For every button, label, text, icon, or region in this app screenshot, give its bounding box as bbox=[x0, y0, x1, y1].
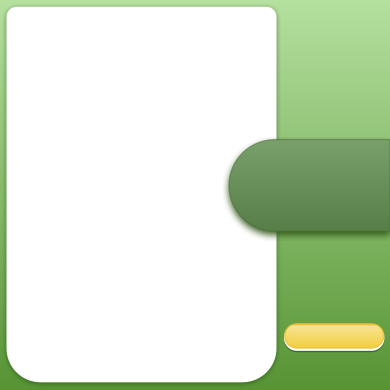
button[interactable]: Action bbox=[285, 324, 384, 354]
